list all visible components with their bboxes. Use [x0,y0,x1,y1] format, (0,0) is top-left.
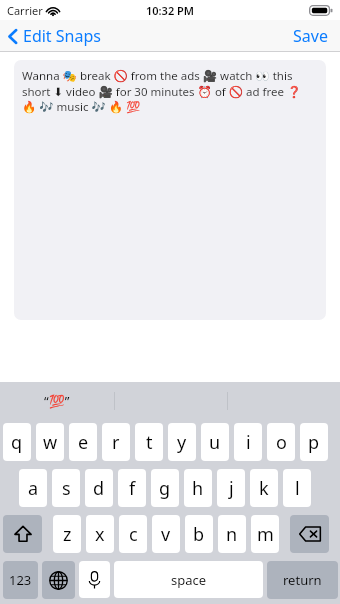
staticText: s [62,476,71,501]
button[interactable]: return [267,561,338,599]
button[interactable]: j [217,469,245,507]
staticText: i [246,430,251,455]
staticText: g [159,476,171,501]
button[interactable]: Save [281,20,340,52]
staticText: t [146,430,153,455]
staticText: y [177,430,187,455]
button[interactable]: v [152,515,180,553]
button[interactable]: u [201,423,229,461]
button[interactable]: Shift [3,515,42,553]
staticText: d [93,476,105,501]
button[interactable]: “💯” [0,382,114,419]
staticText: f [129,476,136,501]
staticText: “💯” [44,392,70,410]
button[interactable]: e [69,423,97,461]
staticText: p [308,430,320,455]
button[interactable]: l [283,469,311,507]
button[interactable]: d [85,469,113,507]
button[interactable]: f [118,469,146,507]
staticText: return [283,571,322,589]
button[interactable]: t [135,423,163,461]
staticText: o [276,430,287,455]
button[interactable]: p [300,423,328,461]
staticText: m [257,522,274,547]
staticText: a [28,476,39,501]
button[interactable]: c [119,515,147,553]
button[interactable]: k [250,469,278,507]
button[interactable]: q [3,423,31,461]
button[interactable]: Wanna 🎭 break 🚫 from the ads 🎥 watch 👀 t… [14,60,326,320]
button[interactable]: w [36,423,64,461]
staticText: Carrier [7,3,43,18]
staticText: b [193,522,205,547]
button[interactable]: Edit Snaps [0,21,111,51]
button[interactable]: h [184,469,212,507]
button[interactable]: g [151,469,179,507]
staticText: h [192,476,204,501]
staticText: Wanna 🎭 break 🚫 from the ads 🎥 watch 👀 t… [22,68,318,114]
button[interactable]: o [267,423,295,461]
button[interactable]: r [102,423,130,461]
button[interactable]: Switch keyboard [42,561,75,599]
staticText: l [295,476,300,501]
staticText: Save [293,25,328,47]
staticText: Edit Snaps [23,25,101,47]
staticText: space [171,571,207,589]
staticText: u [209,430,221,455]
button[interactable]: Dictation [79,561,110,598]
staticText: q [11,430,23,455]
staticText: n [226,522,238,547]
button[interactable]: Backspace [290,515,329,553]
button[interactable]: 123 [3,561,38,599]
staticText: c [129,522,138,547]
button[interactable]: y [168,423,196,461]
button[interactable]: i [234,423,262,461]
button[interactable]: z [53,515,81,553]
button[interactable]: b [185,515,213,553]
staticText: k [259,476,269,501]
button[interactable]: x [86,515,114,553]
button[interactable]: space [114,561,263,598]
button[interactable]: a [19,469,47,507]
staticText: r [112,430,120,455]
button[interactable]: s [52,469,80,507]
staticText: v [161,522,171,547]
staticText: z [63,522,72,547]
staticText: x [95,522,105,547]
staticText: j [229,476,234,501]
staticText: 123 [9,571,32,589]
staticText: e [78,430,89,455]
staticText: w [43,430,58,455]
button[interactable]: m [251,515,279,553]
staticText: 10:32 PM [146,3,195,18]
button[interactable]: n [218,515,246,553]
